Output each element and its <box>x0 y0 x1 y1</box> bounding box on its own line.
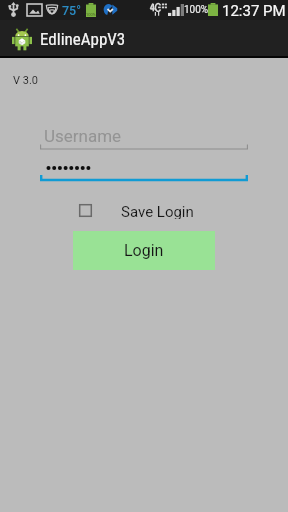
staticText: EdlineAppV3 <box>40 29 126 49</box>
staticText: V 3.0 <box>13 74 38 87</box>
other: App icon <box>12 28 32 52</box>
button[interactable]: Login <box>73 231 215 270</box>
staticText: Username <box>44 126 122 146</box>
staticText: 12:37 PM <box>222 2 286 20</box>
staticText: Save Login <box>121 203 194 219</box>
staticText: 100% <box>184 4 209 16</box>
staticText: Login <box>124 241 164 260</box>
button[interactable] <box>40 157 248 182</box>
button[interactable]: Username <box>40 125 248 150</box>
staticText: 100% <box>86 12 96 17</box>
button[interactable]: Save Login <box>79 204 194 220</box>
button[interactable]: App icon <box>0 20 288 58</box>
staticText: 75° <box>62 3 81 18</box>
